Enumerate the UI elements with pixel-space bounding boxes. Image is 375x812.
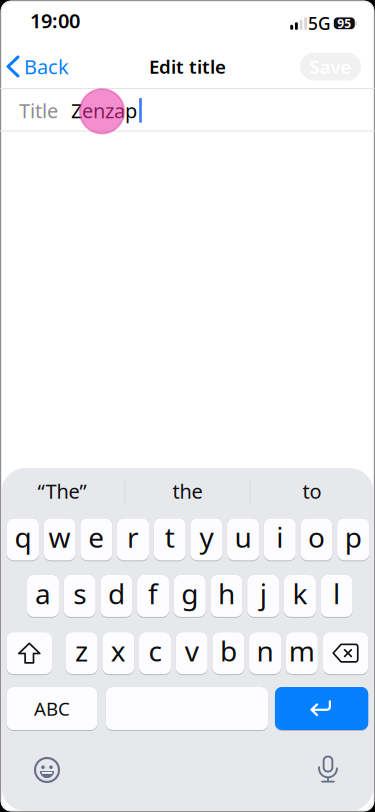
staticText: 19:00	[30, 7, 80, 34]
staticText: x	[111, 632, 126, 669]
button[interactable]: p	[337, 518, 369, 561]
staticText: s	[73, 575, 86, 612]
button[interactable]: k	[284, 575, 316, 618]
button[interactable]: y	[190, 518, 222, 561]
button[interactable]: r	[117, 518, 149, 561]
staticText: o	[308, 518, 325, 555]
button[interactable]: a	[27, 575, 59, 618]
button[interactable]: w	[44, 518, 76, 561]
staticText: p	[345, 518, 362, 555]
staticText: d	[108, 575, 125, 612]
staticText: Zenzap	[71, 97, 137, 124]
staticText: h	[218, 575, 235, 612]
button[interactable]: l	[321, 575, 353, 618]
staticText: u	[235, 518, 252, 555]
button[interactable]: Space	[106, 687, 268, 731]
staticText: Save	[309, 54, 351, 79]
staticText: Back	[24, 53, 69, 80]
button[interactable]: c	[139, 632, 171, 675]
button[interactable]: to	[302, 478, 321, 504]
button[interactable]: Dictate	[318, 756, 337, 783]
button[interactable]: n	[249, 632, 281, 675]
button[interactable]: o	[300, 518, 332, 561]
button[interactable]: m	[286, 632, 318, 675]
staticText: i	[276, 518, 283, 555]
staticText: Edit title	[149, 54, 226, 79]
button[interactable]: j	[247, 575, 279, 618]
button[interactable]: Emoji	[34, 757, 60, 783]
button[interactable]: q	[7, 518, 39, 561]
staticText: e	[88, 518, 104, 555]
button[interactable]: h	[210, 575, 242, 618]
staticText: w	[49, 518, 71, 555]
staticText: b	[220, 632, 237, 669]
staticText: j	[260, 575, 267, 612]
button[interactable]: Back	[8, 53, 69, 80]
button[interactable]: Return	[275, 687, 368, 731]
staticText: a	[35, 575, 51, 612]
button[interactable]: the	[172, 478, 202, 504]
staticText: f	[148, 575, 158, 612]
button[interactable]: u	[227, 518, 259, 561]
button[interactable]: x	[102, 632, 134, 675]
staticText: the	[172, 478, 202, 504]
staticText: z	[75, 632, 88, 669]
staticText: to	[302, 478, 321, 504]
button[interactable]: b	[212, 632, 244, 675]
staticText: m	[289, 632, 315, 669]
button[interactable]: g	[174, 575, 206, 618]
button[interactable]: d	[100, 575, 132, 618]
staticText: r	[127, 518, 139, 555]
staticText: g	[181, 575, 198, 612]
staticText: n	[257, 632, 274, 669]
staticText: 95	[337, 15, 351, 31]
button[interactable]: f	[137, 575, 169, 618]
button[interactable]: z	[66, 632, 98, 675]
staticText: k	[292, 575, 307, 612]
button[interactable]: e	[80, 518, 112, 561]
staticText: Title	[19, 97, 58, 124]
button[interactable]: s	[64, 575, 96, 618]
staticText: c	[148, 632, 161, 669]
button[interactable]: ABC	[7, 687, 97, 731]
button[interactable]: i	[264, 518, 296, 561]
staticText: l	[333, 575, 340, 612]
staticText: “The”	[37, 478, 86, 504]
button[interactable]: “The”	[37, 478, 86, 504]
button[interactable]: t	[154, 518, 186, 561]
staticText: t	[165, 518, 175, 555]
button[interactable]: Title	[0, 89, 375, 131]
button[interactable]: Delete	[323, 632, 368, 675]
staticText: ABC	[34, 696, 70, 721]
staticText: v	[185, 632, 199, 669]
button[interactable]: Save	[300, 52, 361, 80]
staticText: q	[14, 518, 31, 555]
staticText: 5G	[308, 12, 331, 35]
button[interactable]: Shift	[7, 632, 52, 675]
button[interactable]: v	[176, 632, 208, 675]
staticText: y	[199, 518, 213, 555]
